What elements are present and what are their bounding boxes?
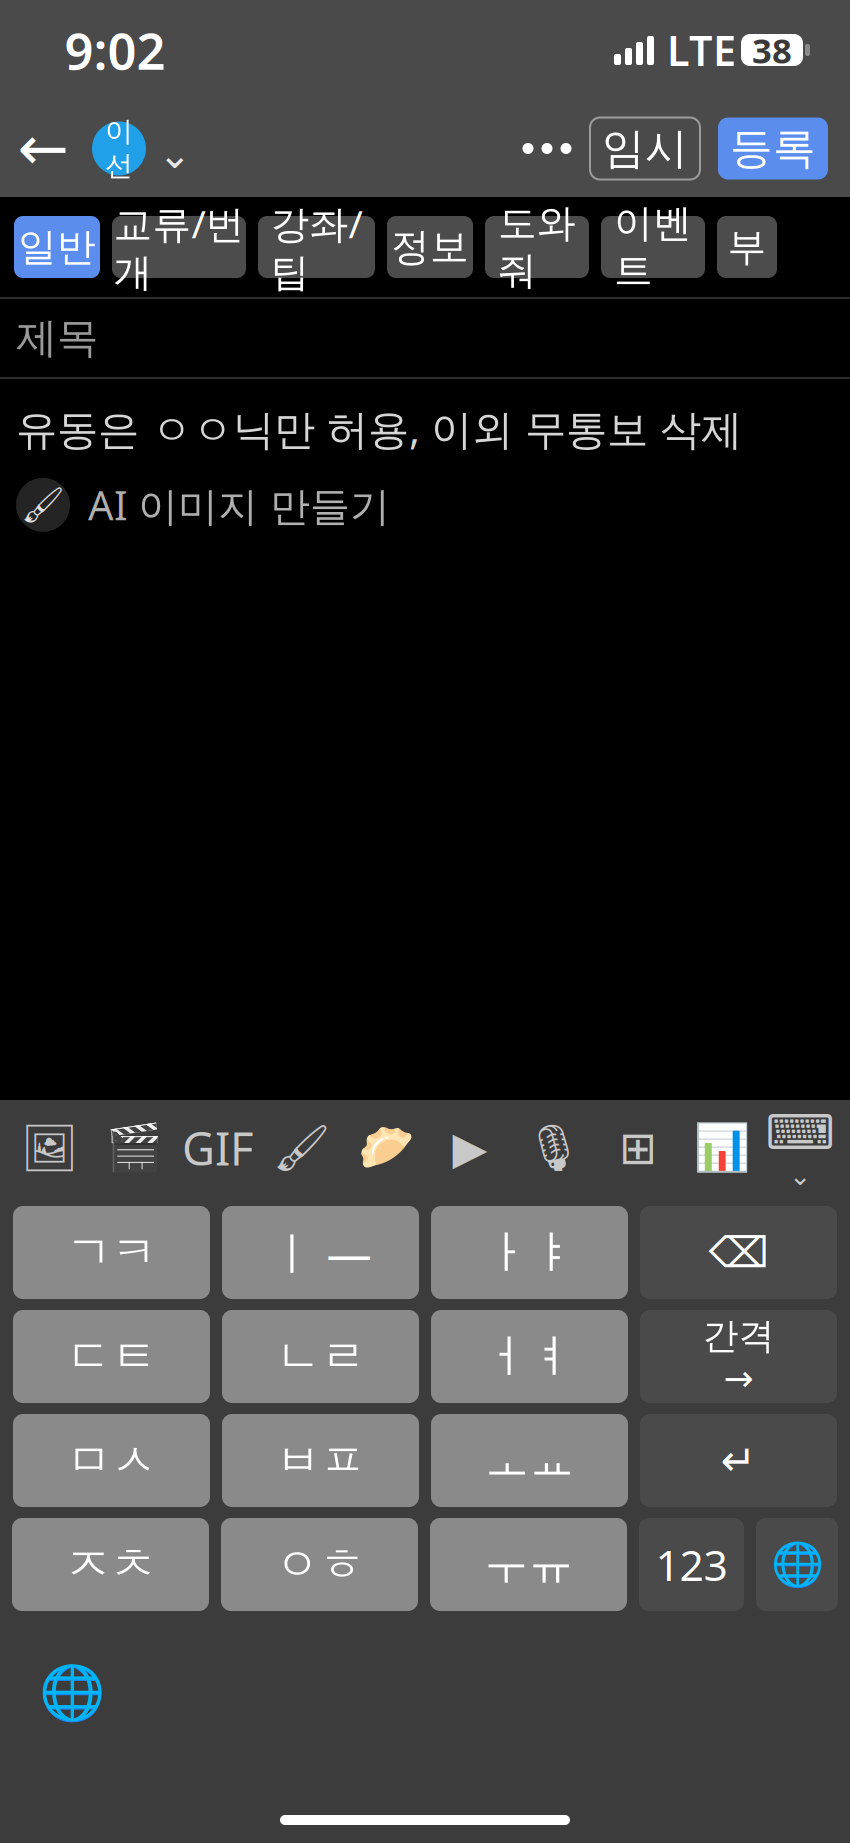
button[interactable]: More (596, 1100, 680, 1196)
staticText: ← (17, 114, 68, 183)
staticText: 38 (752, 27, 792, 73)
staticText: ㅏㅑ (484, 1225, 574, 1280)
button[interactable]: More options (504, 103, 590, 193)
button[interactable]: Poll (680, 1100, 764, 1196)
staticText: 123 (655, 1536, 727, 1593)
button[interactable]: 일반 (14, 216, 100, 278)
staticText: 간격 (702, 1314, 774, 1358)
staticText: ⌨ (765, 1105, 834, 1160)
staticText: 일반 (18, 223, 96, 271)
staticText: 정보 (391, 223, 469, 271)
button[interactable]: Hide keyboard (764, 1100, 836, 1196)
staticText: 🎬 (106, 1122, 162, 1174)
button[interactable]: GIF (176, 1100, 260, 1196)
button[interactable]: 이벤트 (601, 216, 705, 278)
staticText: ⌄ (789, 1161, 811, 1191)
staticText: ㅇㅎ (274, 1537, 364, 1592)
button[interactable]: ㅈㅊ (12, 1518, 209, 1611)
button[interactable]: Voice (512, 1100, 596, 1196)
button[interactable]: ㅣ — (222, 1206, 419, 1299)
staticText: 🖌 (21, 485, 65, 525)
staticText: ⌄ (158, 131, 192, 177)
staticText: 이선 (105, 114, 133, 183)
button[interactable]: ㅜㅠ (430, 1518, 627, 1611)
staticText: 등록 (730, 122, 816, 175)
staticText: → (723, 1358, 753, 1399)
staticText: 🖌 (273, 1122, 331, 1174)
staticText: ⊞ (619, 1122, 657, 1174)
staticText: 부 (727, 223, 766, 271)
staticText: AI 이미지 만들기 (88, 478, 390, 531)
staticText: ㄴㄹ (275, 1329, 365, 1384)
button[interactable]: 부 (717, 216, 777, 278)
staticText: 📊 (694, 1122, 750, 1174)
button[interactable]: Space (640, 1310, 837, 1403)
staticText: ㄷㅌ (66, 1329, 156, 1384)
button[interactable]: 도와줘 (485, 216, 589, 278)
staticText: ⌫ (708, 1228, 768, 1277)
button[interactable]: Video (92, 1100, 176, 1196)
button[interactable]: Sticker (344, 1100, 428, 1196)
staticText: 유동은 ㅇㅇ닉만 허용, 이외 무통보 삭제 (16, 401, 742, 456)
staticText: 🌐 (39, 1662, 105, 1723)
button[interactable]: ㅇㅎ (221, 1518, 418, 1611)
button[interactable]: Change keyboard (32, 1653, 112, 1733)
button[interactable]: ↵ (640, 1414, 837, 1507)
staticText: 강좌/팁 (270, 198, 362, 296)
staticText: GIF (182, 1118, 254, 1178)
button[interactable]: 🌐 (756, 1518, 838, 1611)
staticText: ㅗㅛ (484, 1433, 574, 1488)
button[interactable]: ㅂㅍ (222, 1414, 419, 1507)
button[interactable]: ㅁㅅ (13, 1414, 210, 1507)
staticText: 🎙 (525, 1122, 583, 1174)
button[interactable]: 이선 (86, 103, 198, 193)
staticText: ㅈㅊ (65, 1537, 155, 1592)
button[interactable]: Back (0, 103, 86, 193)
button[interactable]: ⌫ (640, 1206, 837, 1299)
staticText: ㅜㅠ (483, 1537, 573, 1592)
staticText: ㅁㅅ (66, 1433, 156, 1488)
button[interactable]: 임시 (590, 117, 700, 179)
staticText: ↵ (720, 1436, 756, 1485)
staticText: 9:02 (64, 16, 165, 84)
staticText: 이벤트 (614, 199, 692, 294)
button[interactable]: 강좌/팁 (258, 216, 375, 278)
staticText: 도와줘 (498, 199, 576, 294)
button[interactable]: 123 (639, 1518, 744, 1611)
button[interactable]: Video link (428, 1100, 512, 1196)
staticText: 교류/번개 (113, 198, 244, 296)
button[interactable]: 등록 (718, 117, 828, 179)
button[interactable]: 교류/번개 (112, 216, 246, 278)
button[interactable]: ㄱㅋ (13, 1206, 210, 1299)
button[interactable]: ㄴㄹ (222, 1310, 419, 1403)
staticText: ㄱㅋ (66, 1225, 156, 1280)
button[interactable]: ㄷㅌ (13, 1310, 210, 1403)
button[interactable]: ㅏㅑ (431, 1206, 628, 1299)
button[interactable]: ㅓㅕ (431, 1310, 628, 1403)
staticText: ㅣ — (269, 1222, 371, 1283)
staticText: ▶ (452, 1122, 487, 1174)
staticText: ㅂㅍ (275, 1433, 365, 1488)
staticText: 제목 (16, 313, 98, 363)
button[interactable]: Photos (8, 1100, 92, 1196)
staticText: 🖼 (21, 1122, 79, 1174)
staticText: 🌐 (770, 1540, 823, 1589)
staticText: 임시 (602, 122, 688, 175)
staticText: 🥟 (358, 1122, 414, 1174)
staticText: ㅓㅕ (484, 1329, 574, 1384)
button[interactable]: 정보 (387, 216, 473, 278)
staticText: LTE (667, 23, 736, 77)
button[interactable]: ㅗㅛ (431, 1414, 628, 1507)
button[interactable]: 🖌 (16, 478, 390, 532)
button[interactable]: AI draw (260, 1100, 344, 1196)
